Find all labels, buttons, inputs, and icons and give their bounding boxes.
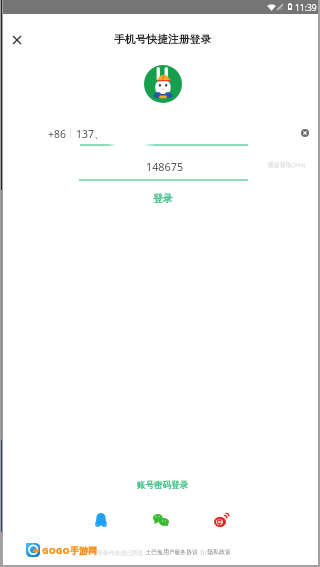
- staticText: 137、: [76, 127, 105, 141]
- staticText: 土巴兔用户服务协议: [144, 548, 200, 556]
- staticText: 手游网: [70, 545, 97, 556]
- staticText: 隐私政策: [206, 548, 231, 556]
- staticText: 登录: [153, 192, 173, 205]
- staticText: 登录代表您已同意: [97, 549, 144, 556]
- staticText: 148675: [146, 159, 184, 174]
- button[interactable]: Clear: [296, 124, 314, 142]
- staticText: 和: [200, 549, 206, 556]
- button[interactable]: Close: [3, 26, 31, 54]
- button[interactable]: 登录: [125, 186, 201, 211]
- staticText: 11:39: [295, 2, 317, 14]
- staticText: 手机号快捷注册登录: [114, 33, 212, 47]
- button[interactable]: QQ login: [85, 504, 117, 536]
- button[interactable]: Weibo login: [205, 504, 237, 536]
- button[interactable]: WeChat login: [145, 504, 177, 536]
- button[interactable]: 重新获取(24s): [268, 159, 306, 171]
- staticText: 账号密码登录: [137, 480, 188, 491]
- staticText: 重新获取(24s): [268, 161, 306, 169]
- staticText: GOGO: [42, 544, 70, 556]
- staticText: +86: [48, 127, 67, 141]
- button[interactable]: 账号密码登录: [113, 474, 212, 497]
